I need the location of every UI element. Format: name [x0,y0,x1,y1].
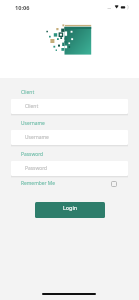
staticText: Password [21,151,44,158]
button[interactable]: Remember Me [21,178,117,189]
staticText: Client [25,103,39,110]
button[interactable]: Login [35,202,105,218]
staticText: Remember Me [21,180,55,187]
other: Remember Me [111,181,117,187]
button[interactable]: Client [11,99,128,114]
staticText: 10:06 [15,4,30,12]
button[interactable]: Username [11,130,128,145]
staticText: Username [25,134,49,141]
staticText: Client [21,89,35,96]
button[interactable]: Password [11,161,128,176]
staticText: Login [63,204,78,211]
staticText: Password [25,165,48,172]
staticText: Username [21,120,45,127]
